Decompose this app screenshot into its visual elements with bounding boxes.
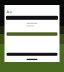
button[interactable] xyxy=(4,53,59,56)
staticText: Aa xyxy=(6,9,11,14)
button[interactable] xyxy=(4,32,59,36)
